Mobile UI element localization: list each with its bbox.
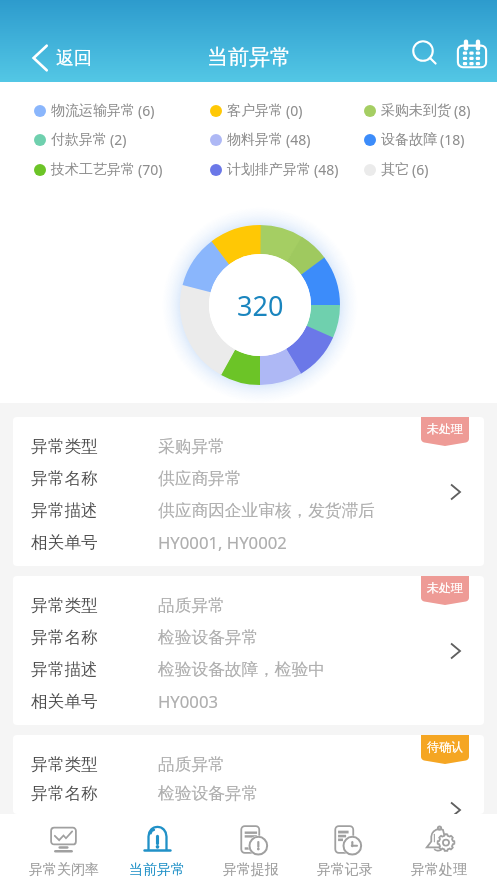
staticText: 320	[237, 287, 284, 324]
staticText: 未处理	[427, 580, 463, 595]
staticText: 未处理	[427, 421, 463, 436]
staticText: 异常类型	[31, 436, 98, 457]
staticText: 物流运输异常	[51, 102, 135, 120]
staticText: (6)	[138, 101, 155, 120]
staticText: HY0003	[158, 690, 218, 713]
staticText: 相关单号	[31, 691, 98, 712]
button[interactable]: 异常类型	[13, 576, 484, 725]
staticText: 检验设备异常	[158, 627, 259, 648]
button[interactable]: 异常类型	[13, 735, 484, 814]
staticText: 品质异常	[158, 595, 225, 616]
staticText: 相关单号	[31, 532, 98, 553]
staticText: 供应商异常	[158, 468, 242, 489]
staticText: (18)	[440, 130, 465, 149]
staticText: 计划排产异常	[227, 161, 311, 179]
button[interactable]: 返回	[0, 21, 104, 61]
staticText: 异常提报	[223, 861, 279, 879]
staticText: HY0001, HY0002	[158, 531, 287, 554]
staticText: 异常名称	[31, 783, 98, 804]
staticText: 异常记录	[317, 861, 373, 879]
staticText: (70)	[138, 160, 163, 179]
button[interactable]: 异常关闭率	[17, 814, 110, 883]
button[interactable]: 异常类型	[13, 417, 484, 566]
staticText: 付款异常	[51, 131, 107, 149]
staticText: 异常名称	[31, 468, 98, 489]
staticText: 当前异常	[207, 44, 291, 70]
staticText: 异常描述	[31, 659, 98, 680]
staticText: 检验设备异常	[158, 783, 259, 804]
staticText: 异常类型	[31, 754, 98, 775]
staticText: 采购未到货	[381, 102, 451, 120]
staticText: (48)	[286, 130, 311, 149]
button[interactable]: 异常处理	[392, 814, 486, 883]
staticText: 品质异常	[158, 754, 225, 775]
staticText: (48)	[314, 160, 339, 179]
staticText: 供应商因企业审核，发货滞后	[158, 500, 375, 521]
staticText: 异常描述	[31, 500, 98, 521]
staticText: 返回	[56, 47, 92, 70]
staticText: (8)	[454, 101, 471, 120]
staticText: 异常处理	[411, 861, 467, 879]
staticText: (6)	[412, 160, 429, 179]
button[interactable]: 异常记录	[298, 814, 392, 883]
staticText: 客户异常	[227, 102, 283, 120]
staticText: 当前异常	[129, 861, 185, 879]
staticText: 物料异常	[227, 131, 283, 149]
staticText: 异常关闭率	[29, 861, 99, 879]
button[interactable]: Search	[405, 33, 447, 75]
staticText: 待确认	[427, 739, 463, 754]
button[interactable]: Calendar	[451, 33, 493, 75]
staticText: 设备故障	[381, 131, 437, 149]
staticText: 异常类型	[31, 595, 98, 616]
staticText: 异常名称	[31, 627, 98, 648]
button[interactable]: 异常提报	[204, 814, 298, 883]
staticText: 检验设备故障，检验中	[158, 659, 325, 680]
staticText: (2)	[110, 130, 127, 149]
staticText: 采购异常	[158, 436, 225, 457]
staticText: (0)	[286, 101, 303, 120]
staticText: 其它	[381, 161, 409, 179]
button[interactable]: 当前异常	[110, 814, 204, 883]
staticText: 技术工艺异常	[51, 161, 135, 179]
